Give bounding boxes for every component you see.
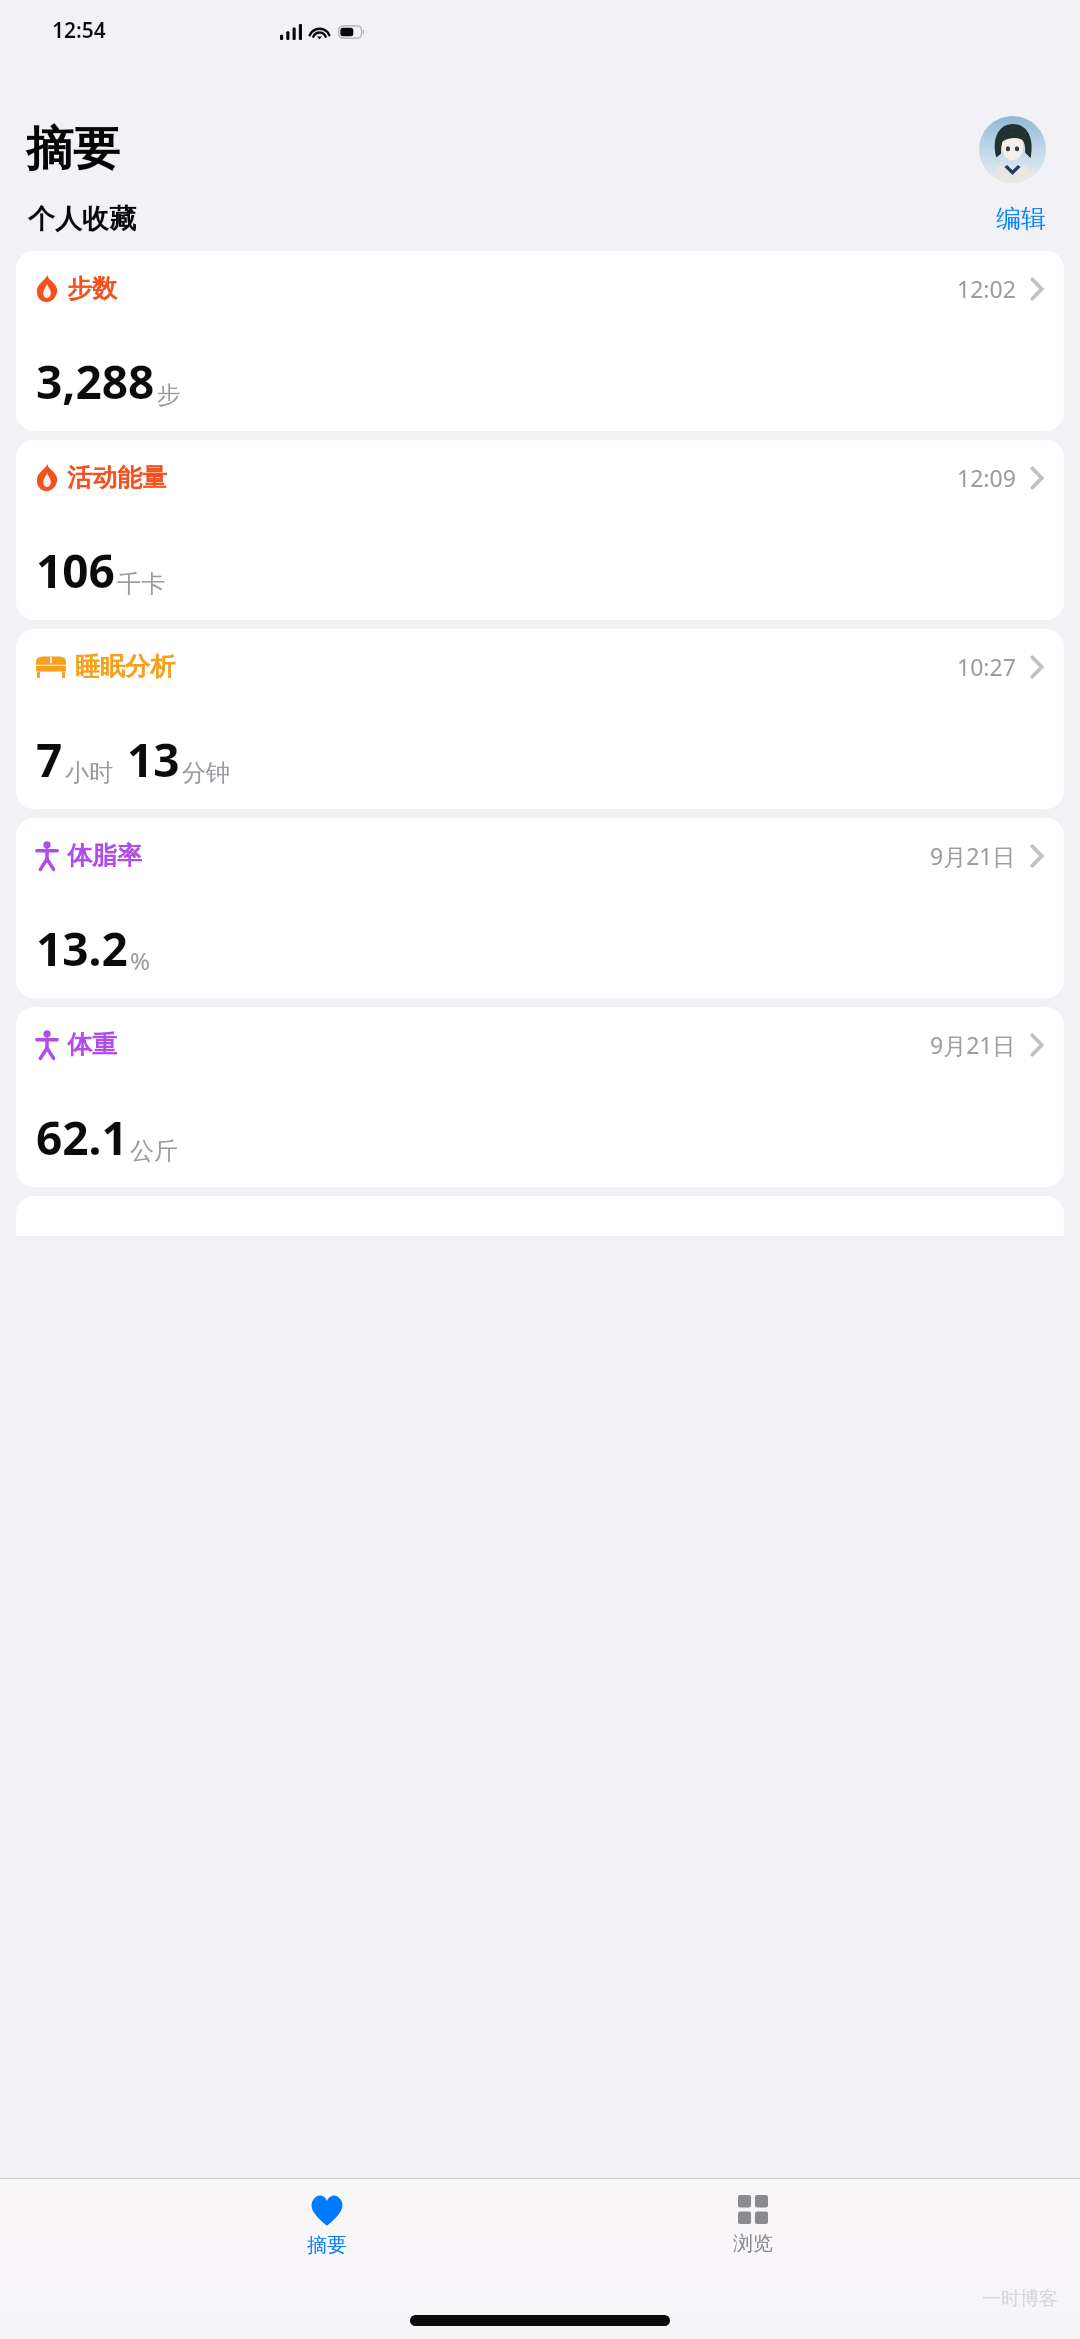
staticText: 12:02 [957,273,1016,304]
button[interactable]: 体脂率 [16,818,1064,998]
staticText: 分钟 [182,758,230,788]
staticText: 步数 [67,273,117,304]
staticText: 浏览 [733,2231,773,2256]
button[interactable]: Profile [979,116,1046,183]
staticText: 个人收藏 [28,202,136,236]
staticText: % [130,944,150,977]
staticText: 睡眠分析 [75,651,175,682]
staticText: 12:54 [52,16,106,45]
staticText: 9月21日 [930,840,1016,871]
staticText: 摘要 [307,2233,347,2258]
button[interactable]: 步数 [16,251,1064,431]
staticText: 12:09 [957,462,1016,493]
button[interactable]: 编辑 [992,199,1050,238]
staticText: 106 [36,539,115,602]
staticText: 13.2 [36,917,128,980]
button[interactable]: 浏览 [653,2193,853,2258]
staticText: 千卡 [117,569,165,599]
button[interactable]: 活动能量 [16,440,1064,620]
button[interactable]: 体重 [16,1007,1064,1187]
button[interactable]: 睡眠分析 [16,629,1064,809]
staticText: 10:27 [957,651,1016,682]
staticText: 体脂率 [67,840,142,871]
staticText: 体重 [67,1029,117,1060]
staticText: 活动能量 [67,462,167,493]
staticText: 一时博客 [982,2287,1058,2311]
staticText: 公斤 [130,1136,178,1166]
staticText: 编辑 [996,203,1046,234]
staticText: 13 [127,728,180,791]
staticText: 摘要 [26,120,120,179]
staticText: 62.1 [36,1106,128,1169]
staticText: 3,288 [36,350,155,413]
staticText: 步 [157,380,181,410]
staticText: 9月21日 [930,1029,1016,1060]
staticText: 7 [36,728,63,791]
staticText: 小时 [65,758,113,788]
button[interactable]: 摘要 [227,2193,427,2260]
